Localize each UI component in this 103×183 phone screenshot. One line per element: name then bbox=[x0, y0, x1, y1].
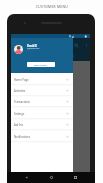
staticText: Ask Iris bbox=[14, 123, 24, 127]
button[interactable]: More options bbox=[84, 43, 89, 48]
button[interactable]: Home bbox=[49, 175, 54, 180]
button[interactable]: Search bbox=[74, 43, 79, 48]
button[interactable]: Notifications bbox=[11, 131, 73, 142]
button[interactable]: Recents bbox=[73, 175, 78, 180]
button[interactable]: Home Page bbox=[11, 74, 73, 85]
button[interactable]: Back bbox=[24, 175, 29, 180]
button[interactable]: Ask Iris bbox=[11, 119, 73, 130]
button[interactable]: Transactions bbox=[11, 96, 73, 107]
button[interactable]: Settings bbox=[11, 108, 73, 119]
button[interactable]: Activities bbox=[11, 85, 73, 96]
staticText: TAB bbox=[69, 55, 75, 59]
staticText: Transactions bbox=[14, 100, 30, 104]
staticText: David D bbox=[27, 44, 37, 48]
staticText: Settings bbox=[14, 112, 25, 116]
staticText: d@gmail.com bbox=[27, 47, 40, 50]
staticText: Notifications bbox=[14, 135, 30, 139]
staticText: Switch to Expert bbox=[34, 64, 48, 66]
staticText: CUSTOMER MENU bbox=[36, 5, 68, 9]
button[interactable]: Switch to Expert bbox=[27, 62, 55, 67]
staticText: Activities bbox=[14, 89, 26, 93]
staticText: Home Page bbox=[14, 78, 29, 82]
